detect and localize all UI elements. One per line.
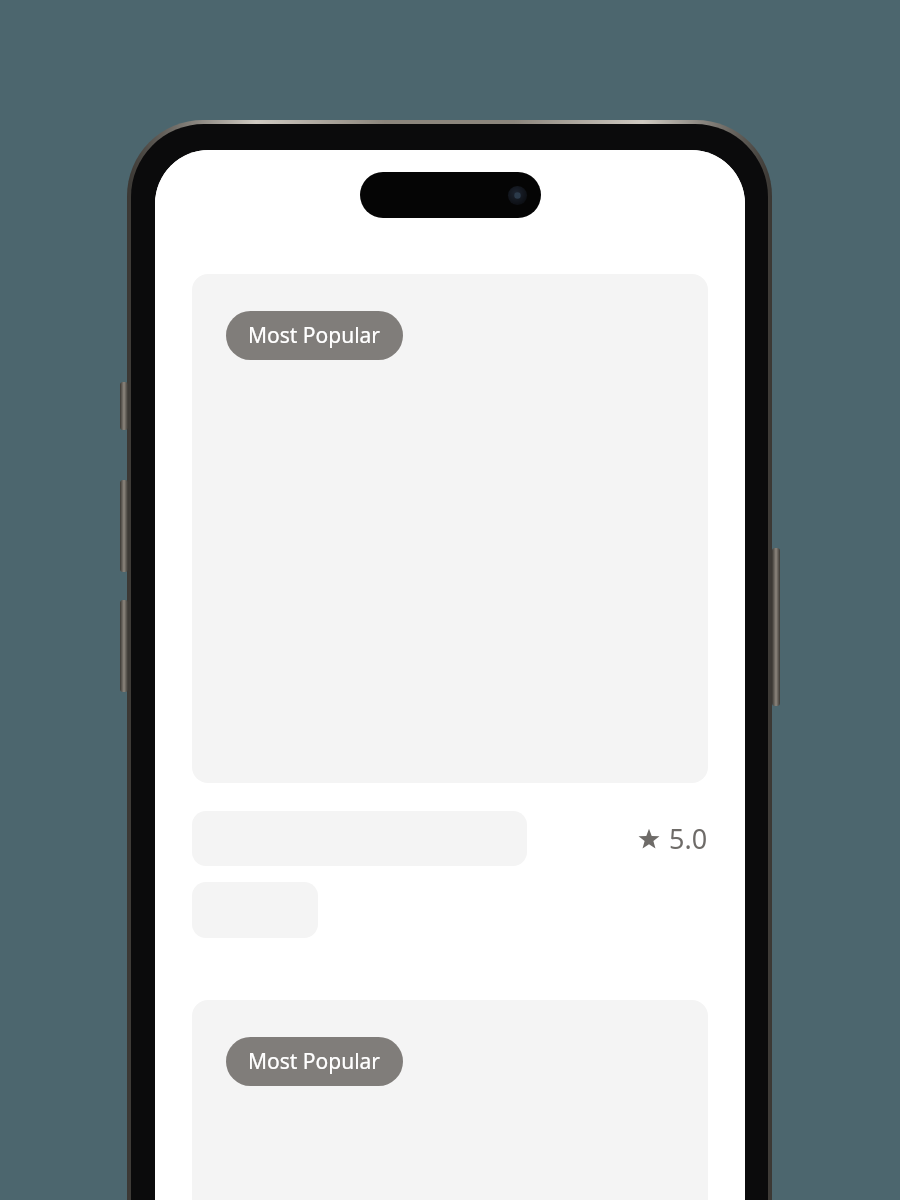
button[interactable]: Power [772,548,780,706]
other: Dynamic Island [360,172,541,218]
staticText: Most Popular [248,321,381,350]
button[interactable]: Volume down [120,600,128,692]
button[interactable]: Volume up [120,480,128,572]
staticText: Most Popular [248,1047,381,1076]
button[interactable]: Most Popular [192,1000,708,1200]
button[interactable]: Most Popular [192,274,708,783]
button[interactable]: Silent switch [120,382,128,430]
button[interactable]: Most Popular [226,1037,403,1086]
button[interactable]: 5.0 [638,820,708,857]
staticText: 5.0 [669,820,708,857]
button[interactable]: Most Popular [226,311,403,360]
